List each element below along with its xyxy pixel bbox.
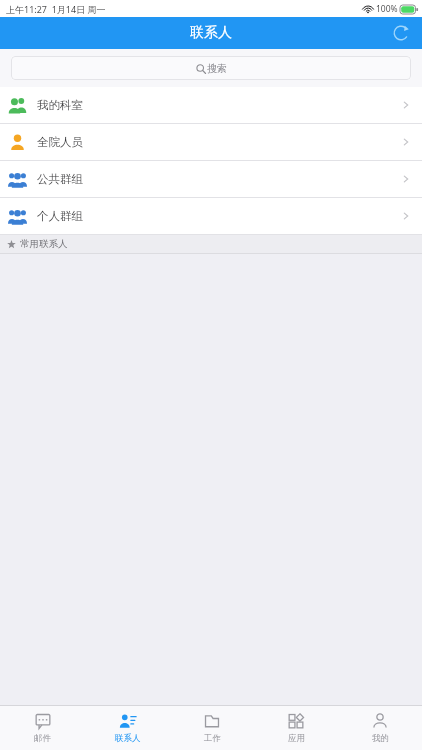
button[interactable]: 邮件 <box>0 706 85 750</box>
staticText: 搜索 <box>207 62 227 75</box>
staticText: 应用 <box>288 733 305 744</box>
button[interactable]: 我的科室 <box>0 87 422 123</box>
staticText: 常用联系人 <box>20 238 68 250</box>
button[interactable]: 公共群组 <box>0 161 422 197</box>
button[interactable]: 搜索 <box>11 56 411 80</box>
staticText: 我的科室 <box>37 98 83 112</box>
staticText: 公共群组 <box>37 172 83 186</box>
button[interactable]: 个人群组 <box>0 198 422 234</box>
button[interactable]: Refresh <box>388 20 414 46</box>
staticText: 邮件 <box>34 733 51 744</box>
button[interactable]: 全院人员 <box>0 124 422 160</box>
button[interactable]: 应用 <box>254 706 338 750</box>
staticText: 工作 <box>204 733 221 744</box>
button[interactable]: 联系人 <box>85 706 170 750</box>
staticText: 我的 <box>372 733 389 744</box>
staticText: 联系人 <box>190 24 232 42</box>
staticText: 个人群组 <box>37 209 83 223</box>
staticText: 全院人员 <box>37 135 83 149</box>
button[interactable]: 我的 <box>338 706 422 750</box>
staticText: 联系人 <box>115 733 141 744</box>
button[interactable]: 工作 <box>170 706 254 750</box>
staticText: 上午11:27 1月14日 周一 <box>6 3 106 15</box>
staticText: 100% <box>376 3 398 15</box>
